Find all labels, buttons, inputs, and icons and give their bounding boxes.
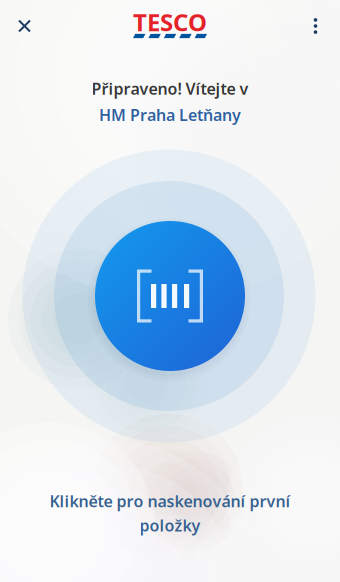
button[interactable]: Close [5,6,44,45]
staticText: položky [139,515,200,536]
staticText: Připraveno! Vítejte v [91,78,248,99]
button[interactable]: More options [296,5,335,47]
staticText: TESCO [133,6,207,38]
staticText: HM Praha Letňany [99,104,241,125]
button[interactable]: Scan an item [95,221,245,371]
staticText: Klikněte pro naskenování první [49,490,290,512]
